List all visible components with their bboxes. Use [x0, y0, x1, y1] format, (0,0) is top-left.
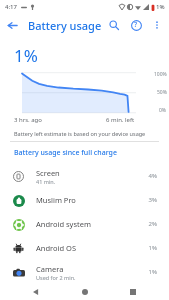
staticText: Muslim Pro — [36, 195, 76, 205]
button[interactable]: Search — [103, 14, 125, 36]
staticText: 50% — [157, 89, 167, 96]
button[interactable]: Battery usage since full charge — [0, 142, 169, 164]
button[interactable]: Screen — [0, 164, 169, 188]
staticText: 1% — [14, 44, 38, 67]
staticText: 1% — [148, 268, 157, 276]
staticText: 6 min. left — [106, 116, 135, 124]
button[interactable]: Back — [0, 13, 24, 37]
staticText: 41 min. — [36, 178, 56, 185]
staticText: Battery left estimate is based on your d… — [14, 130, 159, 137]
staticText: 2% — [148, 220, 157, 228]
button[interactable]: Recent apps — [120, 284, 146, 300]
staticText: 4% — [148, 172, 157, 180]
button[interactable]: Home — [72, 284, 98, 300]
staticText: 1% — [156, 3, 165, 11]
staticText: 3 hrs. ago — [14, 116, 42, 124]
button[interactable]: Camera — [0, 260, 169, 284]
button[interactable]: Android OS — [0, 236, 169, 260]
staticText: 4:17 — [5, 3, 17, 11]
staticText: Battery usage — [28, 18, 102, 33]
staticText: 0% — [159, 107, 167, 114]
button[interactable]: Android system — [0, 212, 169, 236]
button[interactable]: Help — [125, 14, 147, 36]
staticText: 3% — [148, 196, 157, 204]
staticText: ? — [134, 20, 138, 30]
staticText: Android OS — [36, 243, 76, 253]
staticText: Screen — [36, 168, 60, 178]
button[interactable]: More options — [147, 15, 167, 35]
staticText: Battery usage since full charge — [14, 148, 117, 158]
staticText: 100% — [154, 71, 167, 78]
staticText: 1% — [148, 244, 157, 252]
staticText: Android system — [36, 219, 91, 229]
button[interactable]: Back — [23, 284, 49, 300]
button[interactable]: Muslim Pro — [0, 188, 169, 212]
staticText: Camera — [36, 264, 64, 274]
staticText: Used for 2 min. — [36, 274, 76, 281]
